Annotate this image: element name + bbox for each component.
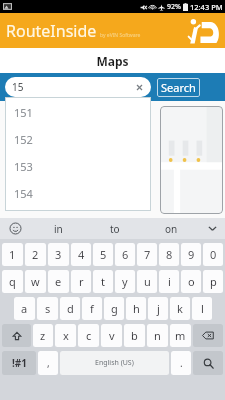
- button[interactable]: 4: [71, 243, 91, 266]
- button[interactable]: y: [115, 270, 135, 293]
- staticText: e: [55, 274, 62, 289]
- staticText: on: [165, 222, 178, 236]
- button[interactable]: on: [143, 218, 199, 239]
- button[interactable]: 152: [5, 126, 151, 153]
- staticText: to: [110, 222, 120, 236]
- button[interactable]: t: [93, 270, 113, 293]
- button[interactable]: English (US): [60, 351, 169, 375]
- staticText: x: [63, 328, 69, 343]
- button[interactable]: 7: [137, 243, 157, 266]
- staticText: in: [54, 222, 63, 236]
- button[interactable]: in: [30, 218, 87, 239]
- staticText: 1: [9, 247, 16, 262]
- staticText: j: [157, 301, 160, 316]
- staticText: k: [177, 301, 183, 316]
- button[interactable]: Backspace: [193, 324, 223, 347]
- button[interactable]: to: [87, 218, 143, 239]
- button[interactable]: !#1: [2, 351, 36, 375]
- button[interactable]: 8: [159, 243, 179, 266]
- staticText: .: [180, 356, 183, 370]
- staticText: g: [111, 301, 118, 316]
- button[interactable]: c: [78, 324, 99, 347]
- button[interactable]: 5: [93, 243, 113, 266]
- button[interactable]: 3: [48, 243, 69, 266]
- button[interactable]: 9: [181, 243, 201, 266]
- button[interactable]: n: [147, 324, 168, 347]
- staticText: 8: [166, 247, 173, 262]
- staticText: 0: [210, 247, 217, 262]
- button[interactable]: k: [170, 297, 190, 320]
- button[interactable]: x: [55, 324, 76, 347]
- staticText: 12:43 PM: [190, 2, 223, 12]
- button[interactable]: Shift: [2, 324, 31, 347]
- button[interactable]: 15: [5, 77, 151, 97]
- staticText: 151: [14, 105, 33, 120]
- staticText: 92%: [167, 2, 181, 12]
- staticText: c: [86, 328, 92, 343]
- button[interactable]: l: [192, 297, 212, 320]
- button[interactable]: p: [203, 270, 223, 293]
- staticText: t: [101, 274, 105, 289]
- button[interactable]: g: [104, 297, 124, 320]
- staticText: f: [90, 301, 94, 316]
- staticText: z: [40, 328, 46, 343]
- button[interactable]: f: [82, 297, 102, 320]
- staticText: English (US): [95, 358, 134, 368]
- button[interactable]: 0: [203, 243, 223, 266]
- button[interactable]: 2: [25, 243, 46, 266]
- staticText: ,: [47, 356, 50, 370]
- button[interactable]: 1: [2, 243, 23, 266]
- button[interactable]: 153: [5, 153, 151, 180]
- button[interactable]: 151: [5, 99, 151, 126]
- button[interactable]: e: [48, 270, 69, 293]
- staticText: r: [79, 274, 84, 289]
- staticText: Maps: [96, 53, 129, 69]
- button[interactable]: i: [159, 270, 179, 293]
- staticText: i: [168, 274, 171, 289]
- staticText: 154: [14, 186, 33, 201]
- staticText: w: [31, 274, 40, 289]
- button[interactable]: b: [124, 324, 145, 347]
- button[interactable]: Search: [157, 78, 200, 97]
- staticText: m: [175, 328, 186, 343]
- staticText: 7: [144, 247, 151, 262]
- staticText: o: [188, 274, 195, 289]
- button[interactable]: u: [137, 270, 157, 293]
- staticText: l: [201, 301, 204, 316]
- staticText: 6: [122, 247, 129, 262]
- button[interactable]: Expand suggestions: [199, 218, 225, 239]
- staticText: v: [109, 328, 115, 343]
- button[interactable]: o: [181, 270, 201, 293]
- button[interactable]: m: [170, 324, 191, 347]
- button[interactable]: Map preview: [160, 106, 223, 214]
- staticText: 152: [14, 132, 33, 147]
- button[interactable]: w: [25, 270, 46, 293]
- button[interactable]: z: [33, 324, 53, 347]
- other: RouteInside logo: [187, 17, 219, 45]
- button[interactable]: .: [171, 351, 191, 375]
- staticText: by eVIN Software: [100, 32, 141, 39]
- button[interactable]: a: [14, 297, 35, 320]
- button[interactable]: Search: [193, 351, 223, 375]
- staticText: 2: [32, 247, 39, 262]
- staticText: y: [122, 274, 128, 289]
- staticText: a: [21, 301, 28, 316]
- button[interactable]: ,: [38, 351, 58, 375]
- button[interactable]: s: [37, 297, 58, 320]
- button[interactable]: Clear text: [135, 83, 144, 92]
- button[interactable]: 6: [115, 243, 135, 266]
- button[interactable]: d: [60, 297, 80, 320]
- button[interactable]: q: [2, 270, 23, 293]
- staticText: 3: [55, 247, 62, 262]
- button[interactable]: h: [126, 297, 146, 320]
- button[interactable]: Emoji: [0, 218, 30, 239]
- staticText: b: [131, 328, 138, 343]
- staticText: q: [9, 274, 16, 289]
- button[interactable]: 154: [5, 180, 151, 207]
- staticText: 9: [188, 247, 195, 262]
- button[interactable]: v: [101, 324, 122, 347]
- button[interactable]: r: [71, 270, 91, 293]
- staticText: !#1: [12, 356, 27, 370]
- staticText: 4: [78, 247, 85, 262]
- button[interactable]: j: [148, 297, 168, 320]
